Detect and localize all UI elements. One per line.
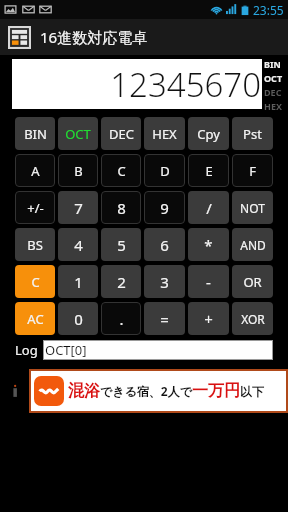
button[interactable]: * xyxy=(188,228,229,261)
staticText: DEC xyxy=(109,125,134,143)
staticText: BIN xyxy=(264,58,281,70)
staticText: 5 xyxy=(117,235,126,255)
button[interactable]: - xyxy=(188,265,229,298)
staticText: +/- xyxy=(27,199,44,217)
staticText: 6 xyxy=(160,235,169,255)
button[interactable]: BS xyxy=(15,228,55,261)
staticText: AC xyxy=(27,310,44,328)
button[interactable]: 8 xyxy=(101,191,141,224)
staticText: 23:55 xyxy=(253,2,284,18)
button[interactable]: DEC xyxy=(101,117,141,150)
staticText: . xyxy=(119,309,124,329)
staticText: DEC xyxy=(264,86,282,98)
staticText: C xyxy=(31,273,40,291)
button[interactable]: C xyxy=(15,265,55,298)
button[interactable]: Cpy xyxy=(188,117,229,150)
button[interactable]: A xyxy=(15,154,55,187)
staticText: Log xyxy=(15,341,38,359)
button[interactable]: D xyxy=(144,154,185,187)
staticText: 9 xyxy=(160,198,169,218)
button[interactable]: Advertisement xyxy=(31,371,286,411)
button[interactable]: / xyxy=(188,191,229,224)
button[interactable]: 9 xyxy=(144,191,185,224)
staticText: NOT xyxy=(240,200,265,216)
button[interactable]: XOR xyxy=(232,302,273,335)
button[interactable]: 4 xyxy=(58,228,98,261)
staticText: 4 xyxy=(74,235,83,255)
button[interactable]: 3 xyxy=(144,265,185,298)
staticText: 以下 xyxy=(240,384,264,399)
button[interactable]: NOT xyxy=(232,191,273,224)
staticText: 7 xyxy=(74,198,83,218)
button[interactable]: F xyxy=(232,154,273,187)
button[interactable]: OR xyxy=(232,265,273,298)
staticText: OCT xyxy=(264,72,283,84)
button[interactable]: HEX xyxy=(144,117,185,150)
staticText: 1 xyxy=(74,272,83,292)
staticText: 16進数対応電卓 xyxy=(40,27,148,47)
staticText: 一万円 xyxy=(192,381,240,401)
button[interactable]: BIN xyxy=(15,117,55,150)
button[interactable]: OCT xyxy=(58,117,98,150)
button[interactable]: AC xyxy=(15,302,55,335)
staticText: AND xyxy=(240,237,266,253)
button[interactable]: 0 xyxy=(58,302,98,335)
button[interactable]: Pst xyxy=(232,117,273,150)
button[interactable]: C xyxy=(101,154,141,187)
button[interactable]: B xyxy=(58,154,98,187)
staticText: + xyxy=(204,309,213,329)
staticText: C xyxy=(117,162,126,180)
staticText: HEX xyxy=(152,125,177,143)
staticText: 8 xyxy=(117,198,126,218)
button[interactable]: E xyxy=(188,154,229,187)
button[interactable]: 6 xyxy=(144,228,185,261)
staticText: OR xyxy=(243,273,262,291)
button[interactable]: 2 xyxy=(101,265,141,298)
staticText: Pst xyxy=(243,125,262,143)
button[interactable]: = xyxy=(144,302,185,335)
staticText: B xyxy=(74,162,83,180)
button[interactable]: +/- xyxy=(15,191,55,224)
staticText: HEX xyxy=(264,100,282,110)
staticText: BIN xyxy=(24,125,47,143)
staticText: 3 xyxy=(160,272,169,292)
staticText: / xyxy=(206,198,212,218)
button[interactable]: 1 xyxy=(58,265,98,298)
staticText: F xyxy=(249,162,256,180)
staticText: 0 xyxy=(74,309,83,329)
staticText: Cpy xyxy=(197,125,220,143)
staticText: できる宿、2人で xyxy=(100,383,192,399)
staticText: OCT[0] xyxy=(45,341,87,359)
staticText: E xyxy=(205,162,213,180)
button[interactable]: OCT[0] xyxy=(43,340,273,360)
staticText: 12345670 xyxy=(110,62,261,107)
staticText: A xyxy=(31,162,40,180)
button[interactable]: . xyxy=(101,302,141,335)
staticText: BS xyxy=(27,236,43,254)
staticText: OCT xyxy=(65,125,91,143)
staticText: XOR xyxy=(241,311,265,327)
staticText: * xyxy=(204,235,213,255)
button[interactable]: AND xyxy=(232,228,273,261)
staticText: 混浴 xyxy=(68,381,100,401)
staticText: 2 xyxy=(117,272,126,292)
staticText: D xyxy=(160,162,170,180)
button[interactable]: + xyxy=(188,302,229,335)
staticText: - xyxy=(206,272,211,292)
button[interactable]: 7 xyxy=(58,191,98,224)
staticText: = xyxy=(160,309,169,329)
button[interactable]: 5 xyxy=(101,228,141,261)
